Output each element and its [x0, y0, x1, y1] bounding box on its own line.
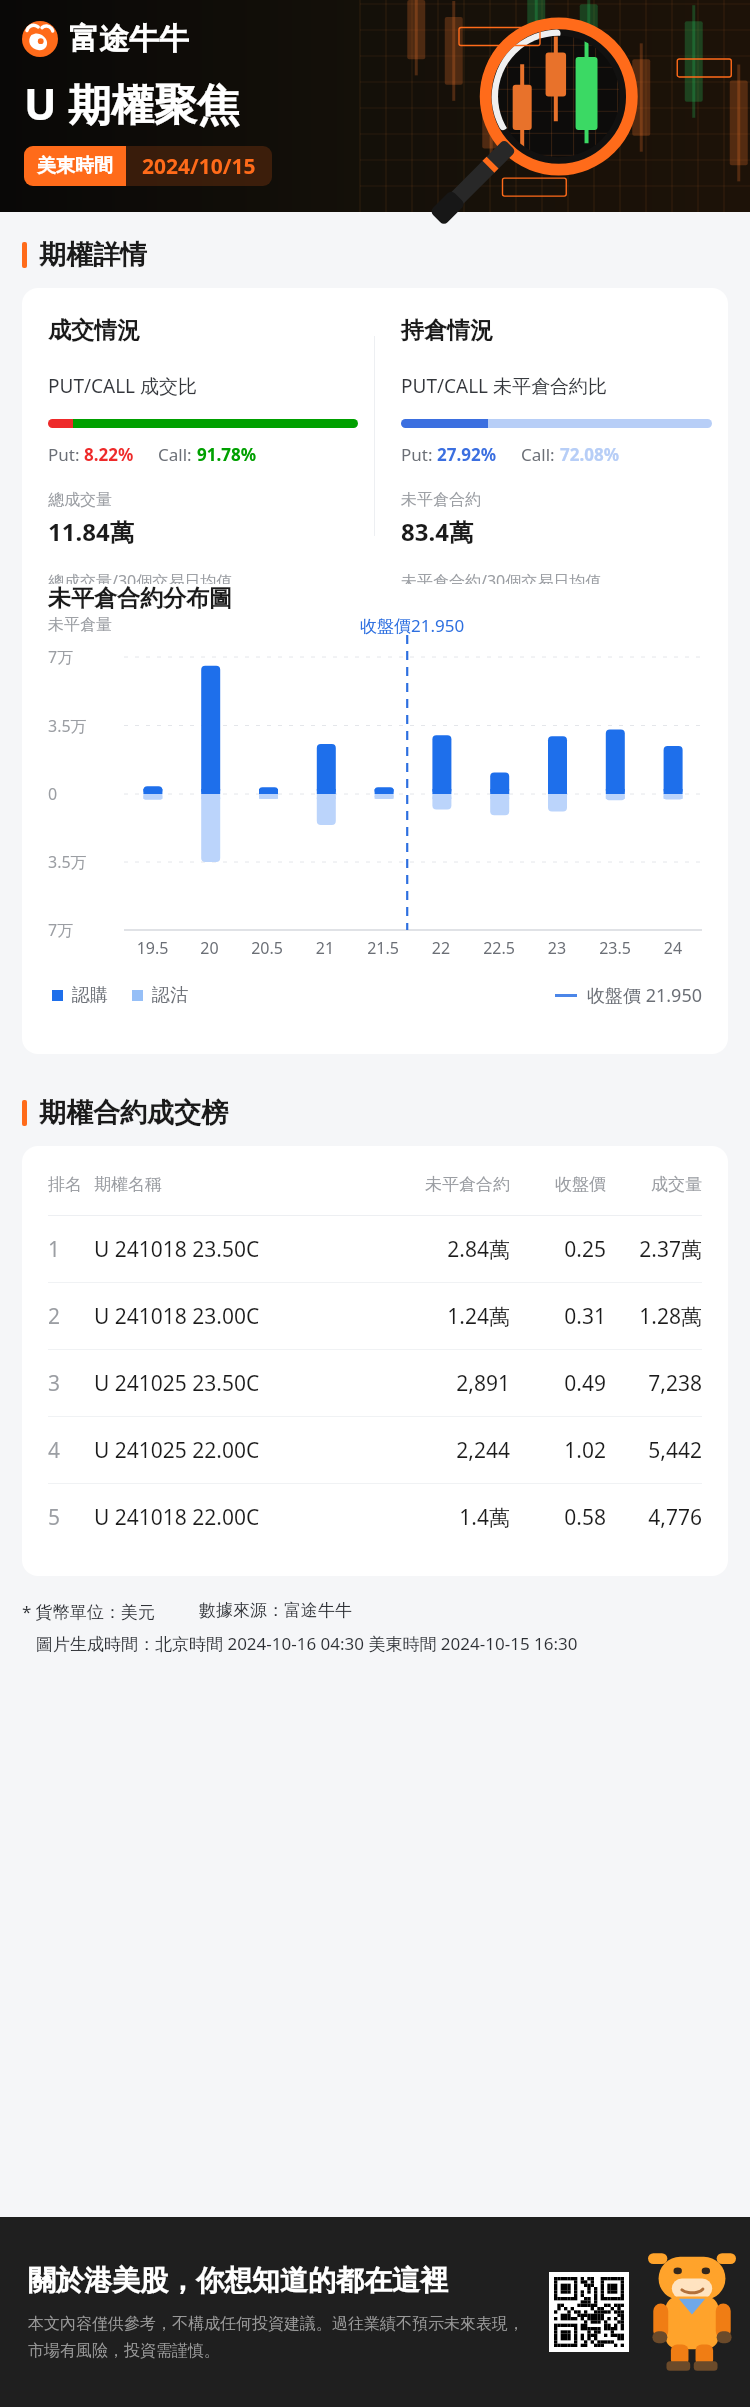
staticText: 1.4萬 [394, 1503, 510, 1532]
staticText: U 241018 23.00C [94, 1302, 260, 1331]
staticText: 2,891 [394, 1369, 510, 1398]
staticText: 1.24萬 [394, 1302, 510, 1331]
staticText: 成交情況 [48, 316, 140, 345]
staticText: 27.92% [437, 443, 497, 466]
staticText: Call: [158, 443, 197, 466]
staticText: 23 [528, 937, 586, 959]
staticText: 3 [48, 1369, 94, 1398]
staticText: 認沽 [152, 984, 188, 1007]
staticText: 3.5万 [48, 715, 87, 737]
staticText: 8.22% [84, 443, 134, 466]
staticText: Call: [521, 443, 560, 466]
staticText: 2.37萬 [606, 1235, 702, 1264]
staticText: 收盤價 [510, 1174, 606, 1195]
staticText: 總成交量/30個交易日均值 [48, 570, 233, 584]
staticText: 期權詳情 [39, 238, 147, 272]
staticText: 19.5 [124, 937, 181, 959]
staticText: U 241018 22.00C [94, 1503, 260, 1532]
staticText: 21.5 [354, 937, 412, 959]
staticText: PUT/CALL 成交比 [48, 373, 198, 399]
staticText: 2024/10/15 [142, 152, 256, 181]
staticText: 22.5 [470, 937, 528, 959]
staticText: 5,442 [606, 1436, 702, 1465]
staticText: 83.4萬 [401, 515, 473, 548]
staticText: 72.08% [560, 443, 620, 466]
staticText: 1 [48, 1235, 94, 1264]
staticText: 4 [48, 1436, 94, 1465]
staticText: 2.84萬 [394, 1235, 510, 1264]
staticText: 1.02 [510, 1436, 606, 1465]
staticText: U 期權聚焦 [24, 74, 240, 133]
staticText: 美東時間 [37, 154, 113, 178]
staticText: U 241025 23.50C [94, 1369, 260, 1398]
staticText: 收盤價21.950 [360, 614, 465, 637]
staticText: 23.5 [586, 937, 644, 959]
staticText: 24 [644, 937, 702, 959]
staticText: 數據來源：富途牛牛 [199, 1600, 352, 1621]
staticText: 排名 [48, 1174, 94, 1195]
button[interactable]: 2 [48, 1283, 702, 1349]
staticText: 0.31 [510, 1302, 606, 1331]
staticText: 收盤價 21.950 [587, 983, 702, 1008]
staticText: 未平倉合約/30個交易日均值 [401, 570, 602, 584]
staticText: 關於港美股，你想知道的都在這裡 [28, 2263, 448, 2298]
staticText: 91.78% [197, 443, 257, 466]
staticText: 21 [296, 937, 354, 959]
staticText: 成交量 [606, 1174, 702, 1195]
staticText: 0.58 [510, 1503, 606, 1532]
staticText: 20.5 [238, 937, 296, 959]
staticText: 未平倉合約 [401, 490, 481, 510]
staticText: 5 [48, 1503, 94, 1532]
staticText: 7万 [48, 646, 74, 668]
staticText: 富途牛牛 [69, 20, 189, 58]
button[interactable]: 1 [48, 1216, 702, 1282]
staticText: 7万 [48, 919, 74, 941]
staticText: 3.5万 [48, 851, 87, 873]
button[interactable]: 3 [48, 1350, 702, 1416]
staticText: 7,238 [606, 1369, 702, 1398]
staticText: PUT/CALL 未平倉合約比 [401, 373, 608, 399]
staticText: 1.28萬 [606, 1302, 702, 1331]
staticText: 持倉情況 [401, 316, 493, 345]
staticText: U 241018 23.50C [94, 1235, 260, 1264]
staticText: 20 [181, 937, 238, 959]
staticText: 2,244 [394, 1436, 510, 1465]
button[interactable]: 5 [48, 1484, 702, 1550]
button[interactable]: 美東時間 [24, 146, 272, 186]
staticText: 4,776 [606, 1503, 702, 1532]
staticText: 11.84萬 [48, 515, 134, 548]
staticText: 0.49 [510, 1369, 606, 1398]
staticText: 認購 [72, 984, 108, 1007]
staticText: U 241025 22.00C [94, 1436, 260, 1465]
button[interactable]: 4 [48, 1417, 702, 1483]
staticText: 期權名稱 [94, 1174, 162, 1195]
staticText: 0 [48, 783, 58, 805]
staticText: 未平倉合約 [394, 1174, 510, 1195]
staticText: Put: [401, 443, 437, 466]
staticText: * 貨幣單位：美元 [22, 1600, 155, 1623]
staticText: 未平倉合約分布圖 [48, 584, 232, 613]
staticText: 期權合約成交榜 [39, 1096, 228, 1130]
staticText: 22 [412, 937, 470, 959]
staticText: 2 [48, 1302, 94, 1331]
staticText: Put: [48, 443, 84, 466]
staticText: 圖片生成時間：北京時間 2024-10-16 04:30 美東時間 2024-1… [36, 1632, 578, 1655]
other: Futubull logo [22, 21, 58, 57]
staticText: 總成交量 [48, 490, 112, 510]
other: Futu mascot [648, 2252, 736, 2372]
staticText: 未平倉量 [48, 615, 112, 635]
staticText: 0.25 [510, 1235, 606, 1264]
other: QR code [554, 2277, 624, 2347]
staticText: 本文內容僅供參考，不構成任何投資建議。過往業績不預示未來表現，市場有風險，投資需… [28, 2314, 526, 2361]
